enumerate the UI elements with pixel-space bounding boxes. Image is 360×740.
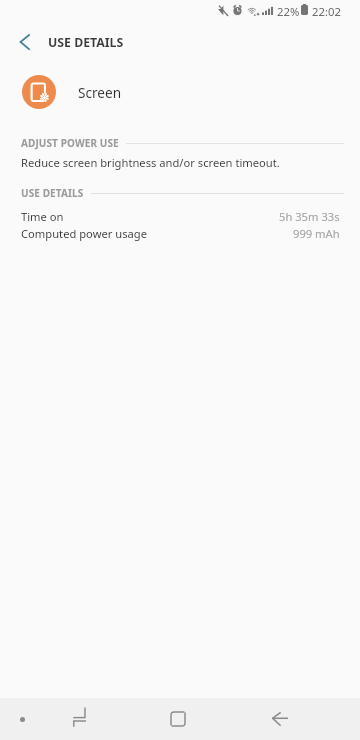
button[interactable]: Recent apps xyxy=(56,698,102,740)
button[interactable]: Back xyxy=(258,698,302,740)
staticText: 999 mAh xyxy=(293,226,340,241)
button[interactable]: Computed power usage xyxy=(0,226,360,241)
button[interactable]: Home xyxy=(157,698,201,740)
button[interactable]: More options xyxy=(0,698,44,740)
button[interactable]: Screen xyxy=(0,70,360,114)
staticText: USE DETAILS xyxy=(21,186,84,200)
button[interactable]: Time on xyxy=(0,209,360,224)
staticText: ADJUST POWER USE xyxy=(21,136,119,150)
staticText: USE DETAILS xyxy=(48,34,124,51)
button[interactable]: Reduce screen brightness and/or screen t… xyxy=(0,152,360,176)
staticText: 22% xyxy=(277,4,300,19)
staticText: Screen xyxy=(78,83,122,102)
staticText: Time on xyxy=(21,209,64,224)
staticText: Reduce screen brightness and/or screen t… xyxy=(21,155,280,170)
button[interactable]: Navigate up xyxy=(8,25,41,58)
staticText: Computed power usage xyxy=(21,226,148,241)
staticText: 22:02 xyxy=(312,4,341,19)
staticText: 5h 35m 33s xyxy=(279,209,340,224)
